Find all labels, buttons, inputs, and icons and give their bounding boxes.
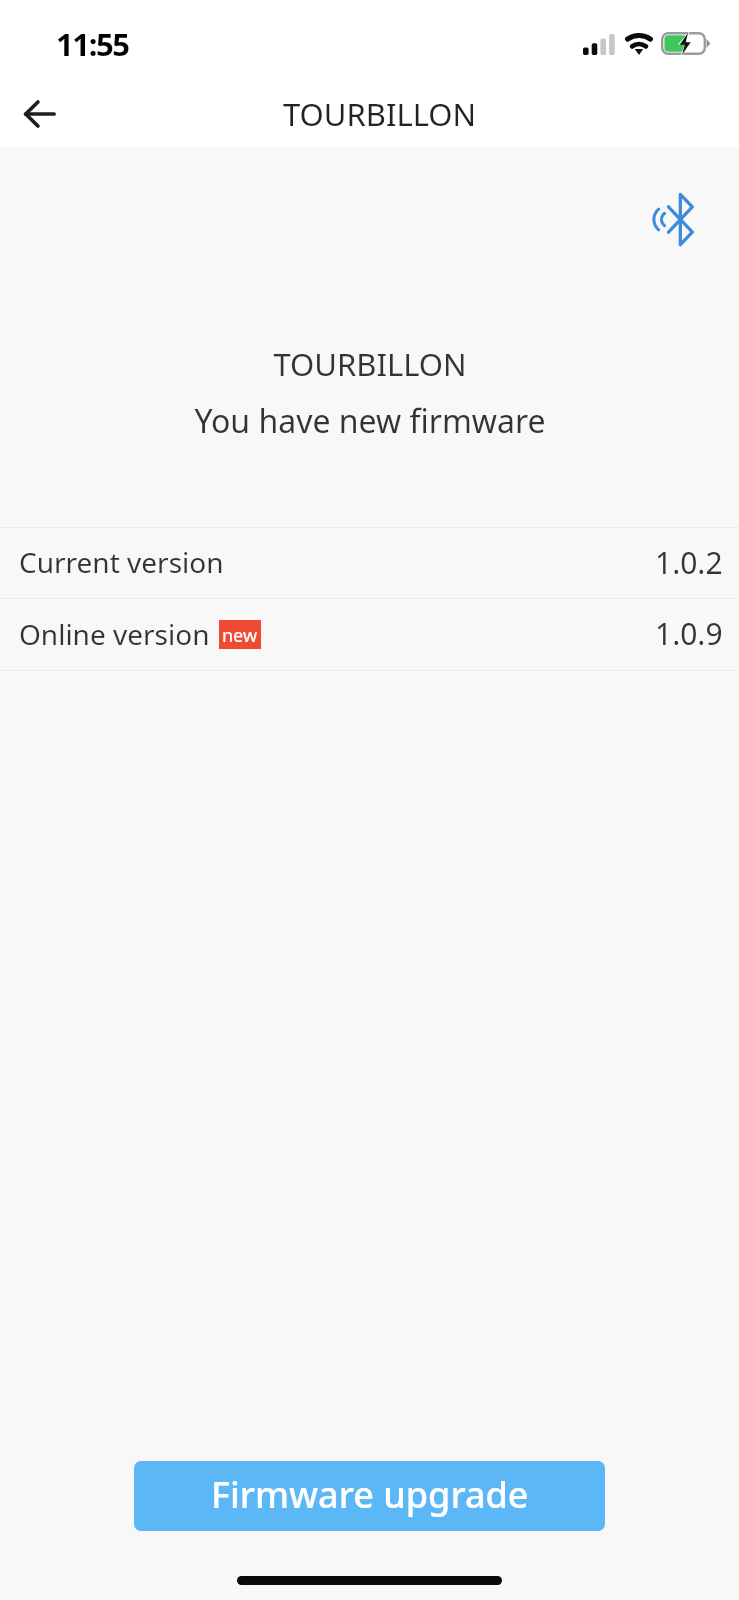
staticText: Current version	[19, 543, 224, 581]
staticText: new	[222, 623, 258, 648]
staticText: Online version	[19, 615, 210, 653]
button[interactable]: Back	[10, 85, 68, 143]
button[interactable]: Firmware upgrade	[134, 1461, 605, 1531]
staticText: You have new firmware	[194, 399, 546, 443]
button[interactable]: Bluetooth connected	[650, 193, 693, 246]
staticText: Firmware upgrade	[211, 1470, 529, 1519]
staticText: TOURBILLON	[283, 93, 477, 135]
staticText: TOURBILLON	[273, 343, 467, 385]
staticText: 11:55	[56, 23, 129, 65]
button[interactable]: Current version	[0, 528, 739, 598]
staticText: 1.0.2	[655, 542, 723, 583]
staticText: 1.0.9	[655, 613, 723, 654]
button[interactable]: Online version	[0, 599, 739, 670]
